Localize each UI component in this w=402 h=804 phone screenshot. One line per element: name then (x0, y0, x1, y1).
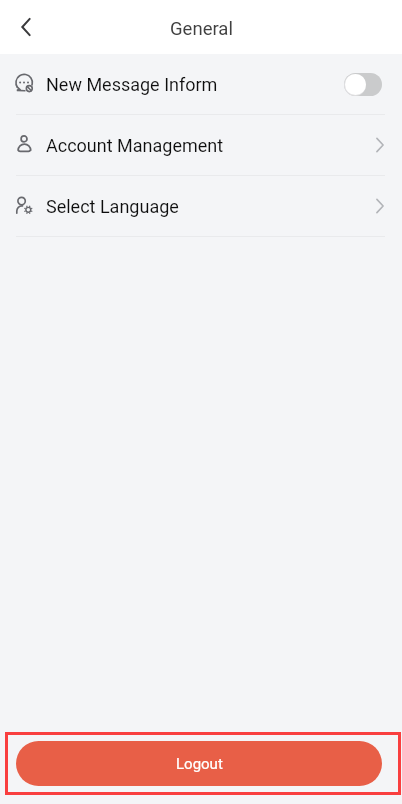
staticText: New Message Inform (46, 74, 218, 95)
staticText: General (170, 18, 233, 40)
button[interactable]: New Message Inform toggle (344, 73, 382, 96)
staticText: Select Language (46, 196, 179, 217)
button[interactable]: Account Management (0, 115, 402, 175)
button[interactable]: Select Language (0, 176, 402, 236)
staticText: Logout (176, 755, 223, 773)
staticText: Account Management (46, 135, 224, 156)
button[interactable]: Back (4, 5, 48, 49)
button[interactable]: New Message Inform (0, 54, 402, 114)
button[interactable]: Logout (16, 741, 382, 786)
